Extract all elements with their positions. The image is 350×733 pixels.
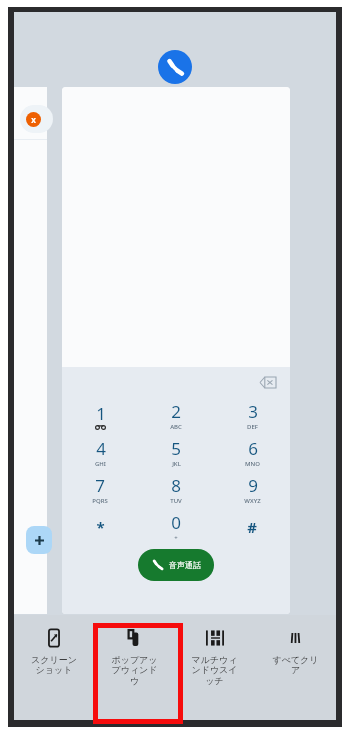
staticText: x xyxy=(31,114,36,125)
staticText: * xyxy=(96,517,105,537)
button[interactable]: # xyxy=(214,508,290,545)
staticText: スクリーン ショット xyxy=(31,654,77,676)
staticText: すべてクリ ア xyxy=(272,654,319,676)
button[interactable]: 6 xyxy=(214,434,290,471)
staticText: DEF xyxy=(247,423,258,431)
button[interactable]: マルチウィ ンドウスイ ッチ xyxy=(174,615,255,720)
button[interactable]: Close xyxy=(20,105,53,133)
staticText: 6 xyxy=(248,437,258,460)
staticText: 音声通話 xyxy=(169,560,201,570)
staticText: 3 xyxy=(248,400,258,423)
staticText: JKL xyxy=(172,460,181,468)
button[interactable]: ポップアッ プウィンド ウ xyxy=(94,615,174,720)
staticText: 9 xyxy=(248,474,258,497)
staticText: マルチウィ ンドウスイ ッチ xyxy=(191,654,238,687)
staticText: TUV xyxy=(170,497,182,505)
staticText: 5 xyxy=(171,437,181,460)
button[interactable]: 5 xyxy=(138,434,214,471)
staticText: PQRS xyxy=(92,497,108,505)
button[interactable]: Add xyxy=(26,526,52,554)
staticText: WXYZ xyxy=(244,497,261,505)
button[interactable]: 2 xyxy=(138,397,214,434)
staticText: 1 xyxy=(96,402,106,425)
button[interactable]: Backspace xyxy=(256,372,280,392)
button[interactable]: 1 xyxy=(62,397,138,434)
staticText: 0 xyxy=(171,511,181,534)
button[interactable]: 0 xyxy=(138,508,214,545)
button[interactable]: 9 xyxy=(214,471,290,508)
button[interactable]: 音声通話 xyxy=(138,549,214,581)
staticText: ポップアッ プウィンド ウ xyxy=(111,654,158,687)
button[interactable]: スクリーン ショット xyxy=(14,615,94,720)
staticText: 4 xyxy=(96,437,106,460)
button[interactable]: 7 xyxy=(62,471,138,508)
button[interactable]: 8 xyxy=(138,471,214,508)
button[interactable]: 3 xyxy=(214,397,290,434)
staticText: + xyxy=(174,534,178,542)
button[interactable]: * xyxy=(62,508,138,545)
staticText: 8 xyxy=(171,474,181,497)
staticText: ABC xyxy=(170,423,182,431)
staticText: # xyxy=(247,517,257,537)
staticText: GHI xyxy=(95,460,106,468)
button[interactable]: すべてクリ ア xyxy=(255,615,336,720)
staticText: MNO xyxy=(245,460,260,468)
button[interactable]: 4 xyxy=(62,434,138,471)
staticText: 7 xyxy=(95,474,105,497)
staticText: 2 xyxy=(171,400,181,423)
button[interactable]: Phone app xyxy=(158,50,192,84)
other: Close xyxy=(26,112,41,127)
